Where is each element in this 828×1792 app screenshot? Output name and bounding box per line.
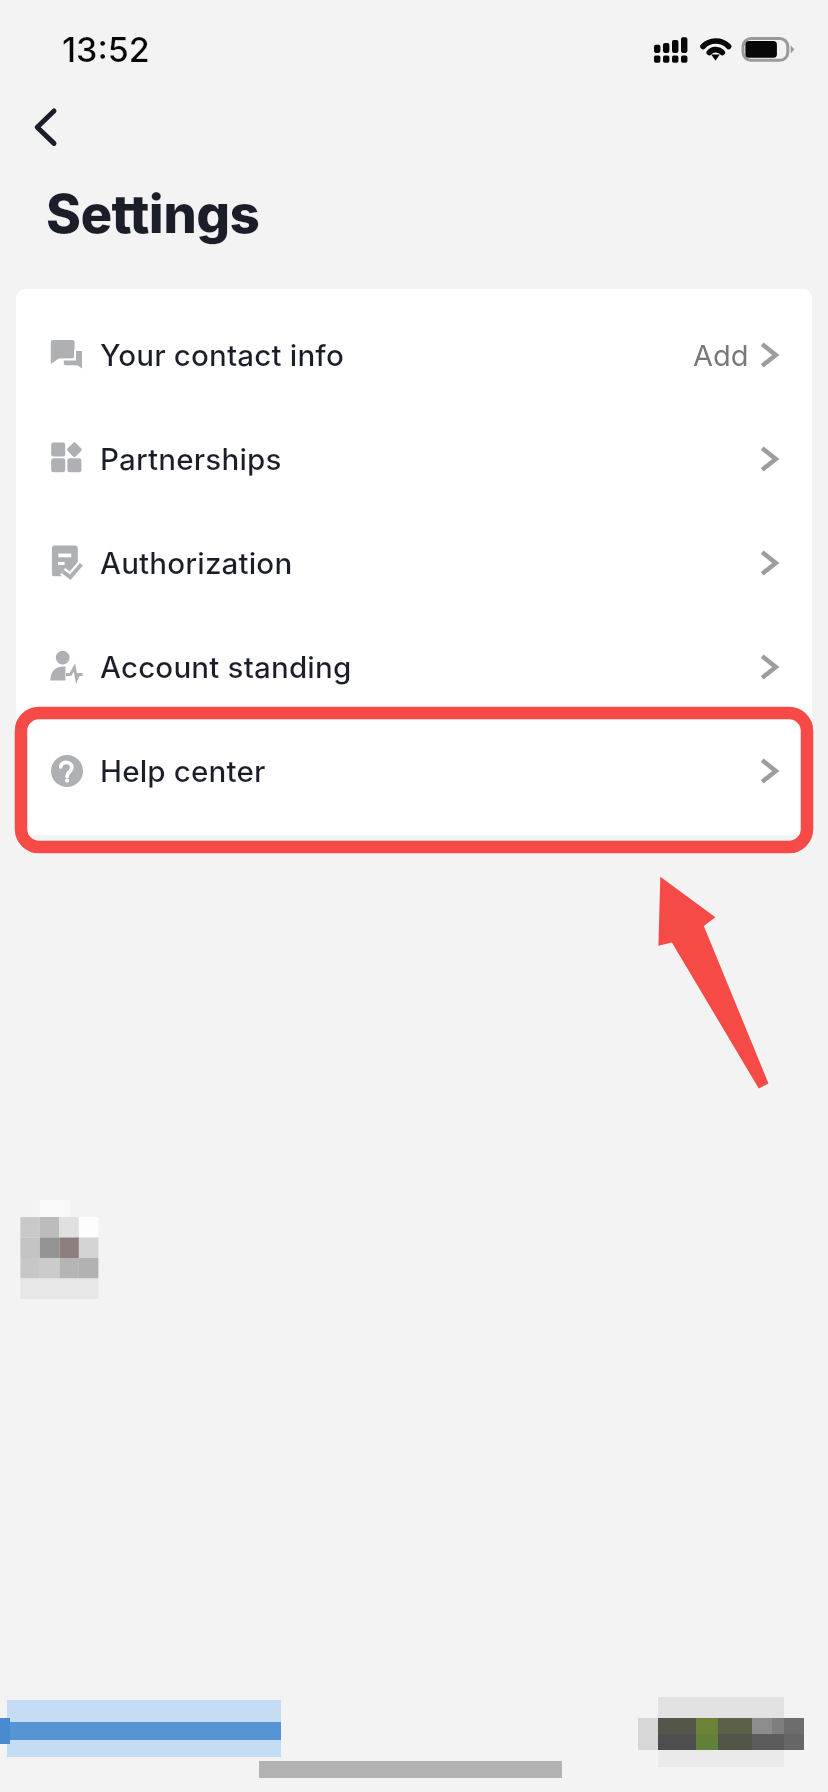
staticText: Settings [46, 182, 260, 246]
button[interactable]: Authorization [16, 511, 812, 615]
staticText: Add [693, 338, 749, 373]
staticText: Authorization [100, 545, 293, 581]
button[interactable]: Partnerships [16, 407, 812, 511]
staticText: 13:52 [62, 29, 150, 70]
staticText: Your contact info [100, 337, 344, 373]
button[interactable]: Account standing [16, 615, 812, 719]
button[interactable]: Help center [16, 719, 812, 823]
staticText: Help center [100, 753, 266, 789]
button[interactable]: Your contact info [16, 303, 812, 407]
button[interactable]: Back [13, 94, 79, 160]
staticText: Account standing [100, 649, 352, 685]
staticText: Partnerships [100, 441, 282, 477]
